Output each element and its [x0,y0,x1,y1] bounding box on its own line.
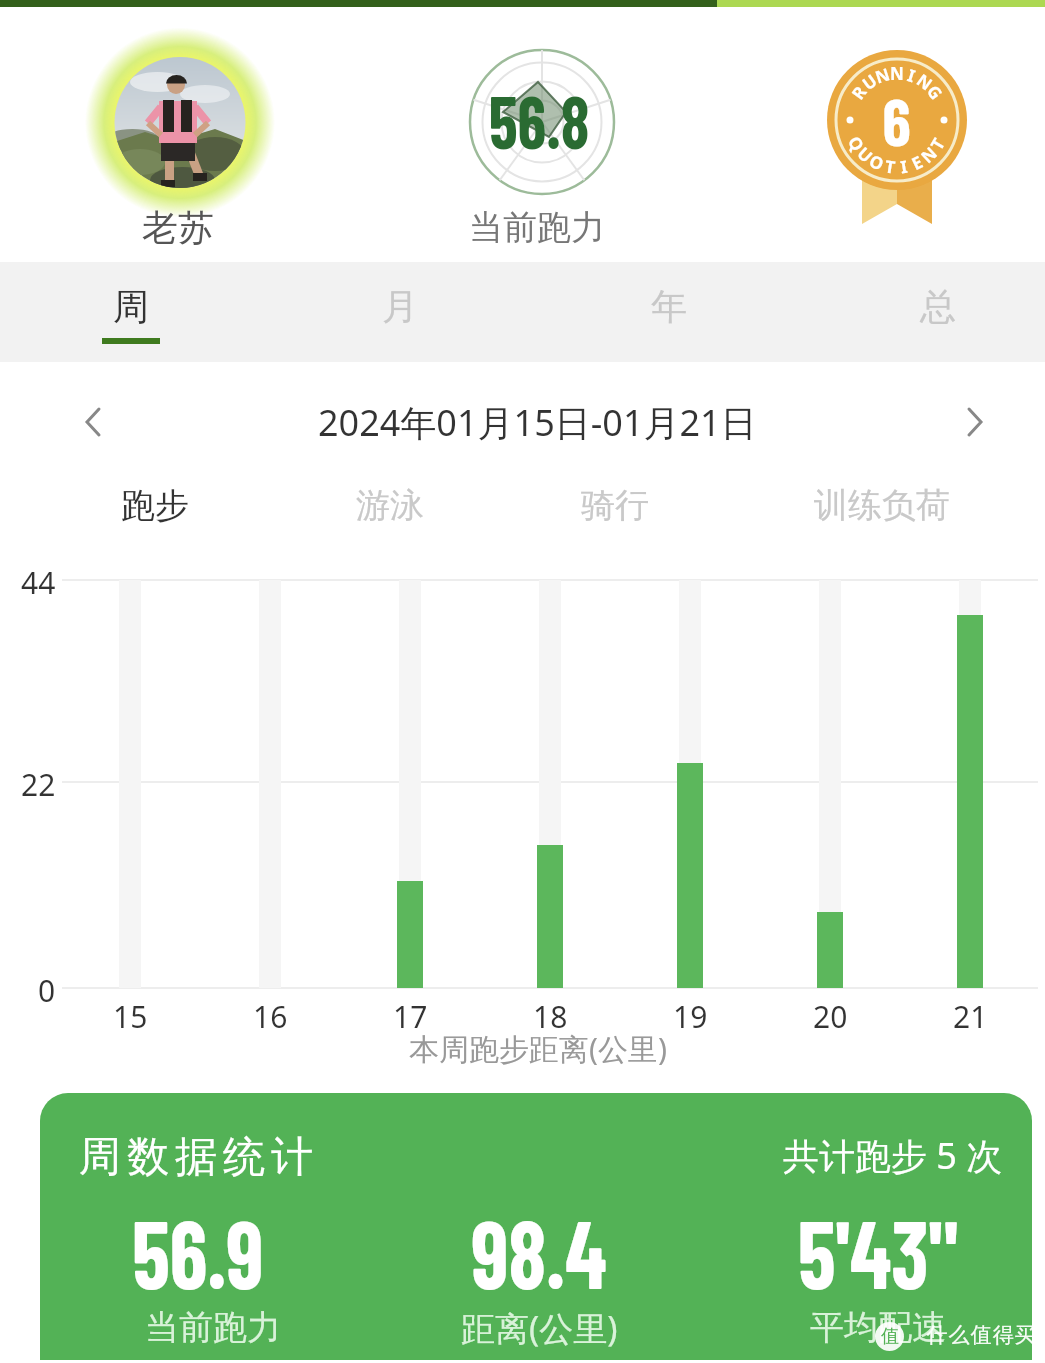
staticText: 56.9 [132,1193,264,1308]
staticText: 老苏 [142,205,214,249]
staticText: 周 [113,284,149,329]
button[interactable] [82,406,106,438]
staticText: 月 [382,284,418,329]
staticText: 当前跑力 [469,206,605,249]
staticText: 本周跑步距离(公里) [409,1028,667,1068]
staticText: 训练负荷 [814,484,950,527]
staticText: 游泳 [356,484,424,527]
button[interactable]: 训练负荷 [797,483,967,527]
staticText: 44 [21,562,56,598]
staticText: 距离(公里) [461,1305,618,1349]
staticText: 21 [953,996,988,1036]
staticText: 跑步 [121,484,189,527]
staticText: 总 [920,284,956,329]
button[interactable] [962,406,986,438]
staticText: 22 [21,764,56,800]
button[interactable]: 周数据统计 [40,1093,1032,1360]
staticText: 当前跑力 [145,1306,281,1349]
staticText: 18 [533,996,568,1036]
button[interactable]: 老苏 [108,205,248,249]
staticText: 骑行 [581,484,649,527]
staticText: 年 [651,284,687,329]
staticText: 56.8 [489,75,590,164]
staticText: 20 [813,996,848,1036]
staticText: 值 [881,1325,899,1348]
button[interactable]: 年 [569,262,769,362]
button[interactable]: 跑步 [85,483,225,527]
button[interactable]: 月 [300,262,500,362]
staticText: 0 [38,970,56,1006]
staticText: 2024年01月15日-01月21日 [318,398,757,446]
staticText: 17 [393,996,428,1036]
staticText: 周数据统计 [76,1131,316,1184]
staticText: 15 [113,996,148,1036]
staticText: 共计跑步 5 次 [783,1131,1003,1180]
button[interactable]: 游泳 [320,483,460,527]
staticText: 16 [253,996,288,1036]
button[interactable]: 周 [31,262,231,362]
staticText: 19 [673,996,708,1036]
staticText: 平均配速 [810,1306,946,1349]
button[interactable]: 骑行 [545,483,685,527]
staticText: 98.4 [471,1193,607,1308]
staticText: 什么值得买 [926,1322,1036,1348]
button[interactable]: 总 [838,262,1038,362]
staticText: 5'43" [798,1193,958,1308]
button[interactable] [75,17,285,227]
